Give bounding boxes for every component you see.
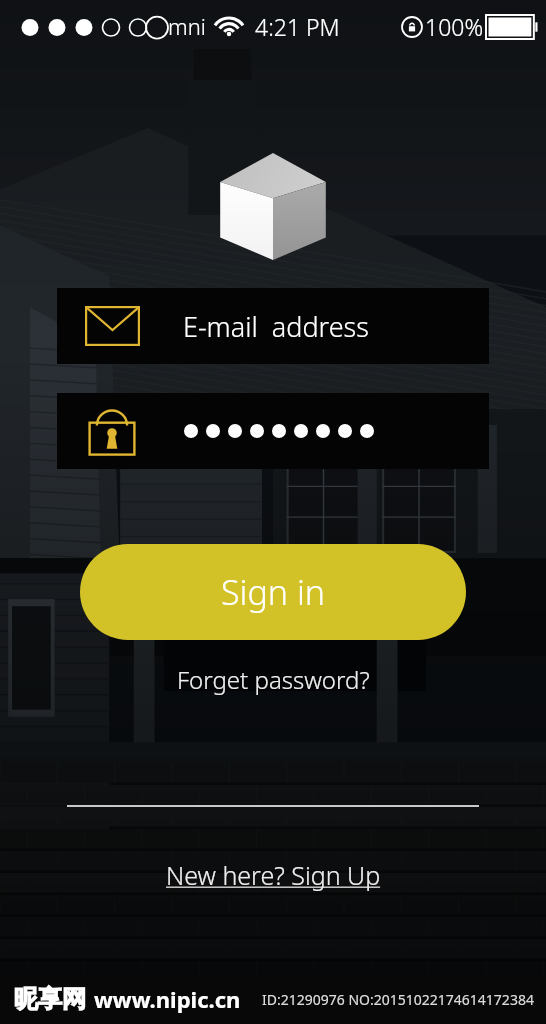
staticText: 4:21 PM (255, 11, 340, 42)
button[interactable]: Forget password? (161, 657, 386, 702)
staticText: New here? Sign Up (166, 858, 381, 892)
button[interactable]: E-mail address (57, 288, 489, 364)
staticText: ID:21290976 NO:20151022174614172384 (262, 990, 534, 1009)
staticText: E-mail address (183, 308, 369, 345)
staticText: Sign in (221, 569, 326, 615)
staticText: 昵享网 (14, 984, 86, 1014)
button[interactable]: New here? Sign Up (156, 854, 391, 896)
staticText: Forget password? (177, 663, 370, 696)
button[interactable]: Sign in (80, 544, 466, 640)
staticText: www.nipic.cn (94, 984, 241, 1014)
staticText: mni (168, 11, 206, 41)
staticText: 100% (425, 11, 484, 42)
button[interactable]: Password (57, 393, 489, 469)
